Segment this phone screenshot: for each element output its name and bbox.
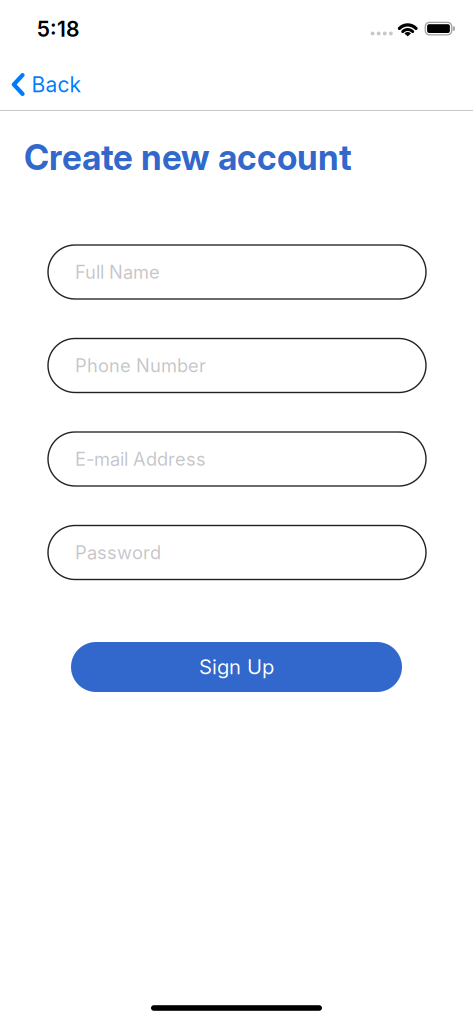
staticText: E-mail Address (75, 448, 206, 470)
staticText: Phone Number (75, 351, 251, 380)
staticText: Create new account (24, 137, 352, 178)
staticText: E-mail Address (75, 444, 252, 474)
staticText: Password (75, 541, 161, 563)
staticText: 5:18 (37, 16, 79, 42)
textField[interactable]: Phone Number (75, 351, 426, 380)
staticText: Sign Up (199, 655, 274, 679)
staticText: Full Name (75, 261, 160, 283)
staticText: Back (31, 72, 80, 97)
secureTextField[interactable]: Password (75, 538, 426, 567)
textField[interactable]: Full Name (75, 257, 426, 287)
staticText: Full Name (75, 257, 192, 287)
staticText: Password (75, 538, 190, 567)
button[interactable]: Sign Up (71, 642, 402, 692)
staticText: Phone Number (75, 354, 206, 376)
button[interactable]: Back (11, 72, 80, 97)
textField[interactable]: E-mail Address (75, 444, 426, 474)
